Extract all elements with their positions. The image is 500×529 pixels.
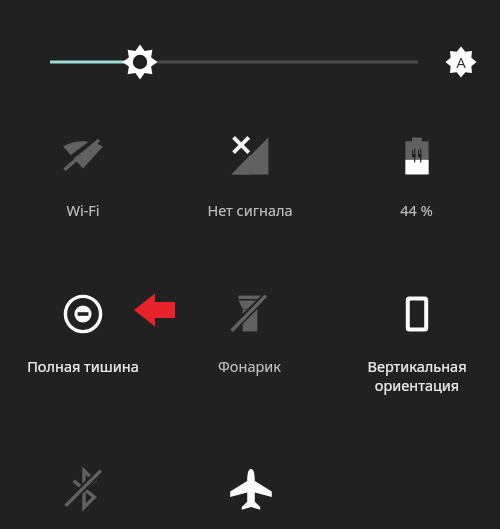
button[interactable]: Вертикальная ориентация [333,292,500,395]
button[interactable]: Auto brightness [437,38,485,86]
staticText: Нет сигнала [207,200,293,220]
button[interactable]: Wi-Fi [0,134,166,220]
button[interactable]: Полная тишина [0,292,166,376]
staticText: 44 % [400,200,433,220]
staticText: A [456,52,466,72]
button[interactable]: 44 % [333,134,500,220]
button[interactable]: Нет сигнала [166,134,333,220]
button[interactable]: Brightness slider [0,0,500,100]
button[interactable]: Режим полета [167,467,334,529]
staticText: Фонарик [218,356,281,376]
staticText: Полная тишина [27,356,139,376]
staticText: Wi-Fi [66,200,100,220]
staticText: Вертикальная ориентация [367,356,467,395]
button[interactable]: Фонарик [166,292,333,376]
button[interactable]: Bluetooth [0,467,167,529]
